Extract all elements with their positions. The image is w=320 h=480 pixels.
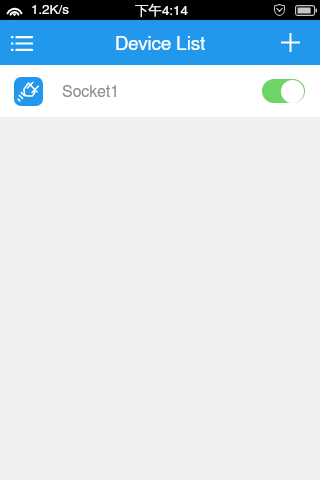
staticText: 下午4:14 xyxy=(135,2,188,19)
button[interactable]: Toggle Socket1 xyxy=(262,79,305,103)
staticText: Socket1 xyxy=(62,84,120,100)
staticText: Device List xyxy=(115,35,206,54)
button[interactable]: Menu xyxy=(0,20,44,65)
staticText: 1.2K/s xyxy=(31,3,69,17)
button[interactable]: Add device xyxy=(260,20,320,65)
button[interactable]: Socket1 xyxy=(0,65,320,117)
